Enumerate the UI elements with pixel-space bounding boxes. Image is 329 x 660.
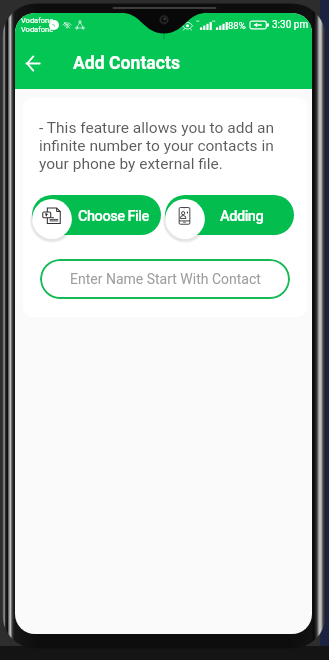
button[interactable]: Enter Name Start With Contact: [40, 259, 290, 299]
staticText: 3:30 pm: [272, 19, 309, 31]
staticText: Enter Name Start With Contact: [70, 271, 261, 287]
staticText: - This feature allows you to add an infi…: [39, 119, 293, 173]
staticText: Add Contacts: [73, 53, 180, 74]
staticText: Adding: [220, 207, 264, 224]
button[interactable]: Back: [16, 46, 50, 80]
staticText: 88%: [228, 20, 246, 31]
staticText: Choose File: [78, 207, 149, 224]
button[interactable]: Choose File: [32, 195, 161, 235]
staticText: Vodafone: [21, 25, 54, 34]
button[interactable]: Adding: [165, 195, 294, 235]
staticText: Vodafone: [21, 16, 54, 25]
